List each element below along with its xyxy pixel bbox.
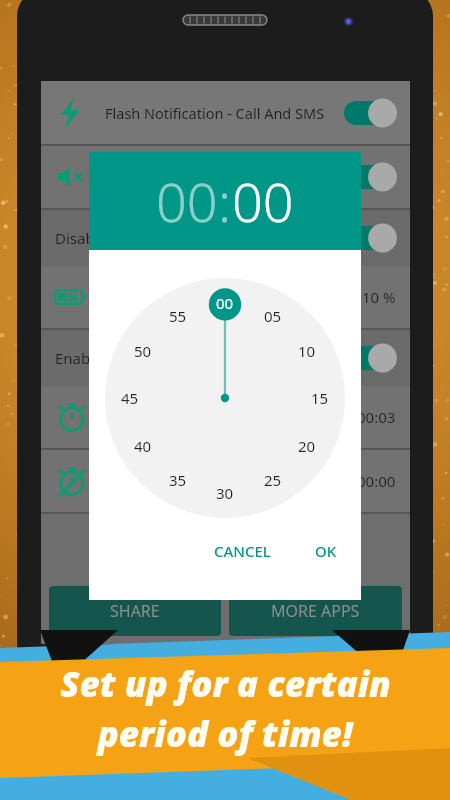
button[interactable]: 45: [113, 381, 147, 415]
staticText: 45: [121, 388, 139, 408]
staticText: 00: [232, 164, 294, 238]
button[interactable]: 10: [290, 334, 324, 368]
staticText: 35: [169, 470, 187, 490]
staticText: Enable in low battery: [55, 348, 203, 368]
staticText: 00: [156, 164, 218, 238]
staticText: CANCEL: [214, 541, 271, 561]
button[interactable]: [344, 162, 396, 192]
button[interactable]: 00:00: [41, 450, 410, 512]
staticText: MORE APPS: [271, 600, 360, 622]
button[interactable]: Disable in silent mode: [41, 210, 410, 266]
staticText: :: [218, 164, 232, 238]
staticText: 30: [216, 483, 234, 503]
button[interactable]: CANCEL: [204, 533, 281, 569]
button[interactable]: 05: [256, 299, 290, 333]
button[interactable]: 30: [208, 476, 242, 510]
staticText: Set up for a certain: [60, 660, 391, 708]
button[interactable]: 15: [303, 381, 337, 415]
staticText: 00:03: [357, 407, 396, 427]
staticText: SHARE: [110, 600, 160, 622]
button[interactable]: 40: [126, 429, 160, 463]
staticText: Flash Notification - Call And SMS: [105, 103, 325, 123]
staticText: 25: [264, 470, 282, 490]
button[interactable]: 00: [208, 286, 242, 320]
staticText: 55: [169, 306, 187, 326]
staticText: period of time!: [97, 710, 353, 758]
staticText: 05: [264, 306, 282, 326]
staticText: Disable in silent mode: [55, 228, 211, 248]
button[interactable]: [344, 98, 396, 128]
button[interactable]: [344, 343, 396, 373]
staticText: 00: [216, 293, 234, 313]
button[interactable]: [41, 146, 410, 208]
staticText: 00:00: [357, 471, 396, 491]
staticText: 10 %: [362, 287, 396, 307]
button[interactable]: OK: [305, 533, 347, 569]
button[interactable]: 55: [161, 299, 195, 333]
staticText: 40: [134, 436, 152, 456]
staticText: 10: [298, 341, 316, 361]
button[interactable]: MORE APPS: [229, 586, 402, 636]
button[interactable]: [344, 223, 396, 253]
staticText: 20: [298, 436, 316, 456]
button[interactable]: SHARE: [49, 586, 221, 636]
button[interactable]: Flash Notification - Call And SMS: [41, 81, 410, 144]
button[interactable]: 00: [156, 164, 218, 238]
button[interactable]: 50: [126, 334, 160, 368]
staticText: OK: [315, 541, 337, 561]
button[interactable]: Enable in low battery: [41, 330, 410, 386]
button[interactable]: 25: [256, 463, 290, 497]
button[interactable]: 20: [290, 429, 324, 463]
staticText: 50: [134, 341, 152, 361]
button[interactable]: 00: [232, 164, 294, 238]
staticText: 15: [311, 388, 329, 408]
button[interactable]: 35: [161, 463, 195, 497]
button[interactable]: 10 %: [41, 266, 410, 328]
button[interactable]: 00:03: [41, 386, 410, 448]
